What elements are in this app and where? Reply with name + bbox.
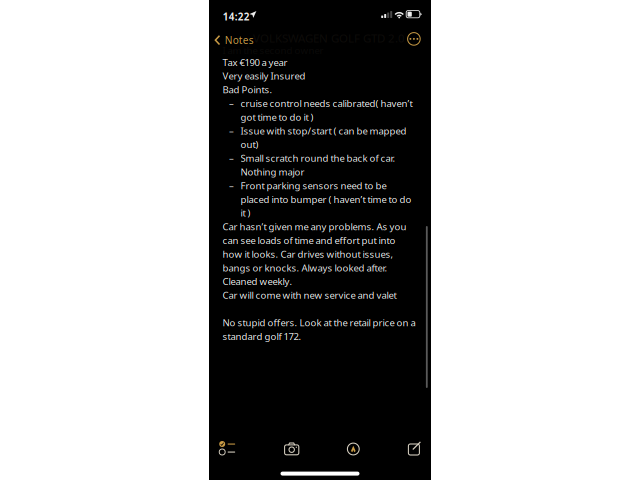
button[interactable]: Markup — [340, 438, 366, 460]
staticText: out) — [241, 138, 259, 151]
staticText: Issue with stop/start ( can be mapped — [241, 124, 407, 137]
staticText: cruise control needs calibrated( haven’t — [241, 97, 413, 110]
button[interactable]: Notes — [208, 27, 263, 53]
staticText: Nothing major — [241, 165, 305, 178]
staticText: Notes — [225, 33, 254, 47]
staticText: got time to do it ) — [241, 110, 314, 123]
staticText: Tax €190 a year — [223, 56, 288, 69]
staticText: – — [229, 124, 234, 137]
staticText: placed into bumper ( haven’t time to do — [241, 193, 412, 206]
staticText: it ) — [241, 206, 251, 219]
staticText: No stupid offers. Look at the retail pri… — [223, 316, 416, 329]
staticText: 14:22 — [223, 10, 250, 23]
staticText: – — [229, 179, 234, 192]
button[interactable]: Camera — [279, 437, 305, 459]
staticText: – — [229, 97, 234, 110]
button[interactable]: More — [401, 27, 427, 51]
staticText: Bad Points. — [223, 83, 273, 96]
staticText: how it looks. Car drives without issues, — [223, 247, 394, 260]
staticText: Very easily Insured — [223, 69, 306, 82]
staticText: standard golf 172. — [223, 330, 302, 343]
staticText: bangs or knocks. Always looked after. — [223, 261, 388, 274]
staticText: can see loads of time and effort put int… — [223, 234, 396, 247]
button[interactable]: Checklist — [219, 437, 245, 459]
staticText: – — [229, 151, 234, 165]
staticText: Small scratch round the back of car. — [241, 151, 396, 165]
staticText: Car hasn’t given me any problems. As you — [223, 220, 407, 233]
staticText: Car will come with new service and valet — [223, 288, 397, 302]
button[interactable]: Compose — [401, 437, 427, 459]
staticText: Front parking sensors need to be — [241, 179, 387, 192]
staticText: VOLKSWAGEN GOLF GTD 2.0 — [253, 30, 405, 46]
staticText: Cleaned weekly. — [223, 275, 293, 288]
